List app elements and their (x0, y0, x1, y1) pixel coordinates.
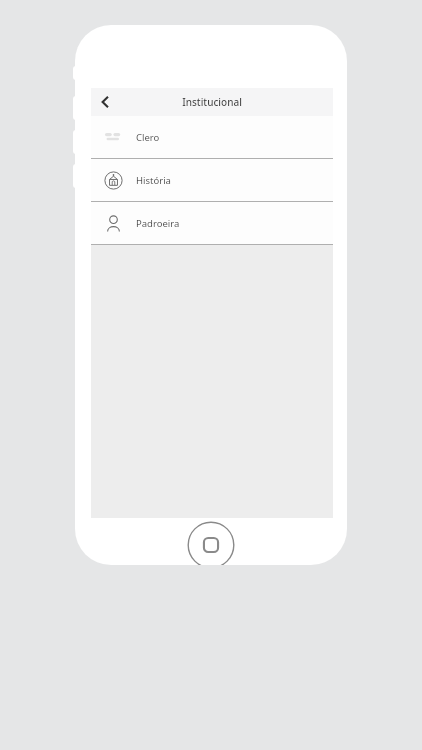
staticText: Institucional (182, 95, 242, 109)
button[interactable]: Back (91, 88, 119, 116)
staticText: Clero (136, 131, 160, 144)
button[interactable]: Clero (91, 116, 333, 158)
button[interactable]: Padroeira (91, 202, 333, 244)
staticText: História (136, 174, 171, 187)
staticText: Padroeira (136, 217, 180, 230)
button[interactable]: Home (187, 521, 235, 565)
button[interactable]: História (91, 159, 333, 201)
